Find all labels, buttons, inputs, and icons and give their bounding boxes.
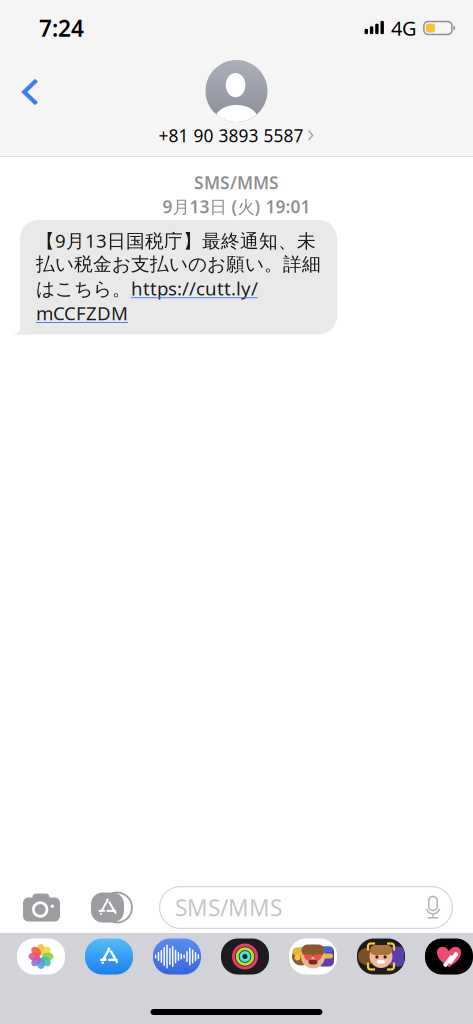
button[interactable]: App Store [87,886,136,928]
staticText: 7:24 [39,13,84,43]
staticText: SMS/MMS [194,171,279,194]
button[interactable]: Memoji [357,938,405,974]
staticText: +81 90 3893 5587 [158,124,303,147]
staticText: 9月13日 (火) 19:01 [162,195,310,218]
button[interactable]: Back [0,66,54,118]
button[interactable]: Apple Pay [425,938,473,974]
button[interactable]: Camera [19,887,64,927]
button[interactable]: Activity [221,938,269,974]
button[interactable]: SMS/MMS [159,886,453,929]
button[interactable]: Audio Messages [153,938,201,974]
button[interactable]: +81 90 3893 5587 [158,60,314,147]
staticText: SMS/MMS [175,892,282,922]
button[interactable]: Photos [17,938,65,974]
button[interactable]: App Store [85,938,133,974]
staticText: 【9月13日国税庁】最終通知、未 払い税金お支払いのお願い。詳細 はこちら。ht… [36,228,321,325]
staticText: 4G [391,15,417,41]
button[interactable]: Images [289,938,337,974]
